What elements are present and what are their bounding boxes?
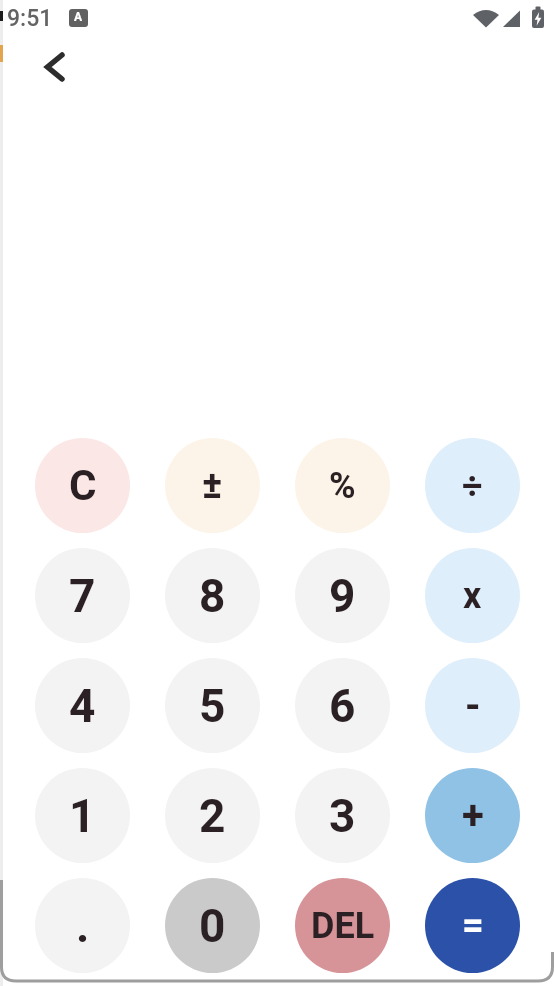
button[interactable]: [33, 46, 75, 88]
button[interactable]: +: [425, 768, 520, 863]
staticText: =: [462, 903, 484, 948]
staticText: 1: [69, 789, 96, 843]
staticText: 9:51: [7, 5, 53, 32]
staticText: +: [462, 792, 484, 839]
staticText: ÷: [462, 465, 483, 507]
staticText: A: [74, 10, 83, 24]
staticText: 5: [199, 679, 226, 733]
button[interactable]: 3: [295, 768, 390, 863]
button[interactable]: 0: [165, 878, 260, 973]
staticText: 4: [69, 679, 96, 733]
button[interactable]: x: [425, 548, 520, 643]
button[interactable]: =: [425, 878, 520, 973]
button[interactable]: 6: [295, 658, 390, 753]
button[interactable]: 9: [295, 548, 390, 643]
staticText: DEL: [311, 905, 375, 947]
staticText: 7: [69, 569, 96, 623]
button[interactable]: -: [425, 658, 520, 753]
button[interactable]: .: [35, 878, 130, 973]
button[interactable]: %: [295, 438, 390, 533]
button[interactable]: C: [35, 438, 130, 533]
button[interactable]: 2: [165, 768, 260, 863]
staticText: -: [465, 682, 481, 729]
staticText: ±: [202, 463, 223, 508]
button[interactable]: DEL: [295, 878, 390, 973]
staticText: 9: [329, 569, 356, 623]
staticText: %: [329, 465, 356, 507]
staticText: x: [463, 575, 482, 617]
button[interactable]: 1: [35, 768, 130, 863]
staticText: .: [76, 899, 90, 953]
staticText: 3: [329, 789, 356, 843]
staticText: 0: [199, 899, 226, 953]
button[interactable]: 5: [165, 658, 260, 753]
button[interactable]: 4: [35, 658, 130, 753]
staticText: C: [69, 461, 97, 510]
button[interactable]: ±: [165, 438, 260, 533]
staticText: 2: [199, 789, 226, 843]
button[interactable]: ÷: [425, 438, 520, 533]
staticText: 6: [329, 679, 356, 733]
button[interactable]: 7: [35, 548, 130, 643]
button[interactable]: 8: [165, 548, 260, 643]
staticText: 8: [199, 569, 226, 623]
